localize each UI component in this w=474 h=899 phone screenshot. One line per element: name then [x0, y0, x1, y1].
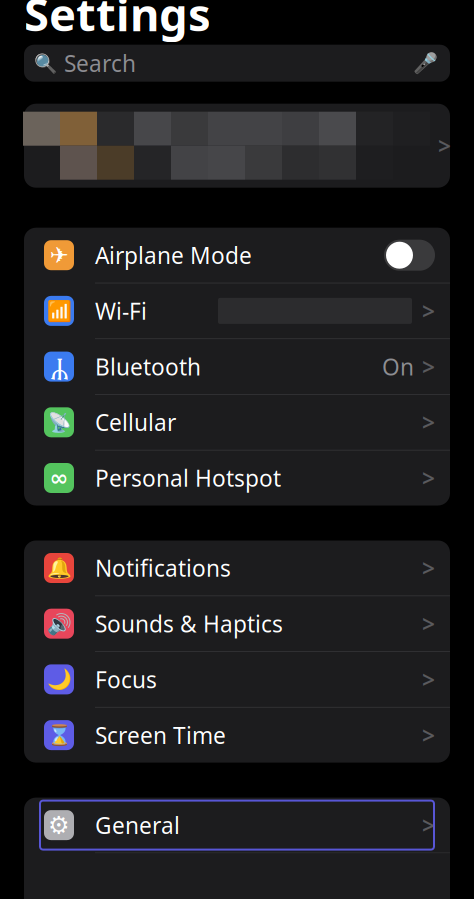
button[interactable]: 🔔	[24, 540, 450, 595]
staticText: 📡	[47, 412, 70, 433]
staticText: Bluetooth	[95, 351, 201, 382]
staticText: >	[438, 131, 451, 161]
staticText: >	[422, 351, 435, 382]
staticText: Airplane Mode	[95, 240, 252, 270]
staticText: 📶	[46, 299, 71, 322]
button[interactable]: 🔊	[24, 596, 450, 651]
button[interactable]: ✈	[24, 228, 450, 283]
staticText: 🌙	[46, 668, 71, 691]
button[interactable]: Apple Account	[24, 104, 450, 188]
staticText: Personal Hotspot	[95, 463, 281, 493]
staticText: General	[95, 810, 180, 840]
staticText: ∞	[49, 465, 68, 491]
button[interactable]: ∞	[24, 450, 450, 505]
staticText: Sounds & Haptics	[95, 609, 283, 639]
staticText: Wi-Fi	[95, 296, 147, 326]
staticText: >	[422, 720, 435, 750]
staticText: >	[422, 609, 435, 639]
staticText: ⌛	[46, 724, 71, 747]
staticText: >	[422, 296, 435, 326]
staticText: Search	[64, 48, 136, 78]
staticText: Cellular	[95, 407, 176, 437]
staticText: ✈	[49, 242, 68, 268]
staticText: ᛦ	[50, 352, 67, 381]
staticText: >	[422, 810, 435, 840]
staticText: >	[422, 664, 435, 694]
button[interactable]: Airplane Mode	[384, 240, 435, 271]
staticText: >	[422, 407, 435, 437]
staticText: Screen Time	[95, 720, 226, 750]
button[interactable]: ⌛	[24, 708, 450, 763]
button[interactable]: 📶	[24, 283, 450, 338]
staticText: Notifications	[95, 553, 231, 583]
staticText: Settings	[24, 0, 211, 44]
staticText: >	[422, 463, 435, 493]
staticText: On	[382, 351, 414, 382]
staticText: >	[422, 553, 435, 583]
staticText: 🔍	[34, 52, 57, 74]
button[interactable]: Search	[24, 45, 450, 82]
staticText: 🎤	[413, 52, 438, 75]
staticText: ⚙	[48, 811, 70, 839]
button[interactable]: ᛦ	[24, 339, 450, 394]
button[interactable]: ⚙	[24, 798, 450, 853]
staticText: 🔔	[46, 557, 71, 579]
staticText: 🔊	[46, 612, 71, 635]
staticText: Focus	[95, 664, 157, 694]
button[interactable]: 📡	[24, 395, 450, 450]
button[interactable]: 🌙	[24, 652, 450, 707]
